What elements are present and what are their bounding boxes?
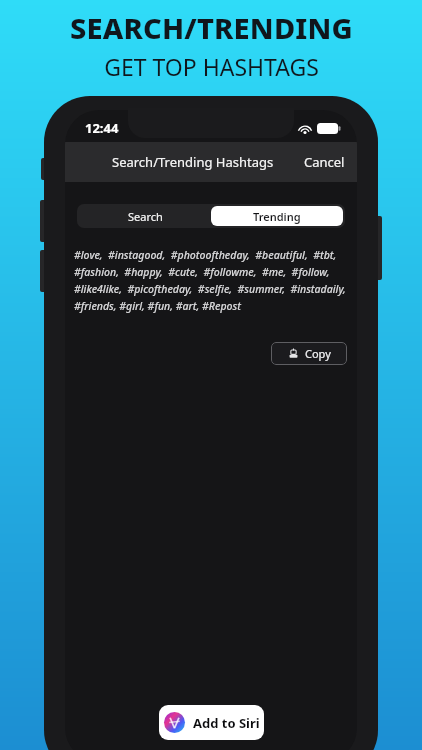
staticText: #friends, #girl, #fun, #art, #Repost — [74, 299, 241, 313]
staticText: Search — [128, 209, 163, 224]
staticText: SEARCH/TRENDING — [70, 8, 353, 47]
staticText: Add to Siri — [193, 714, 260, 732]
button[interactable]: Copy — [271, 342, 347, 365]
button[interactable]: Trending — [211, 206, 343, 226]
staticText: #like4like, #picoftheday, #selfie, #summ… — [74, 282, 346, 296]
staticText: #fashion, #happy, #cute, #followme, #me,… — [74, 265, 330, 279]
staticText: #love, #instagood, #photooftheday, #beau… — [74, 248, 337, 262]
staticText: Search/Trending Hashtags — [112, 153, 274, 171]
button[interactable]: Cancel — [292, 147, 357, 177]
button[interactable]: Search — [79, 206, 211, 226]
staticText: Cancel — [304, 153, 345, 171]
staticText: 12:44 — [85, 119, 119, 137]
staticText: Copy — [305, 346, 331, 361]
button[interactable]: Add to Siri — [159, 705, 264, 740]
staticText: Trending — [253, 209, 301, 224]
staticText: GET TOP HASHTAGS — [104, 51, 319, 82]
